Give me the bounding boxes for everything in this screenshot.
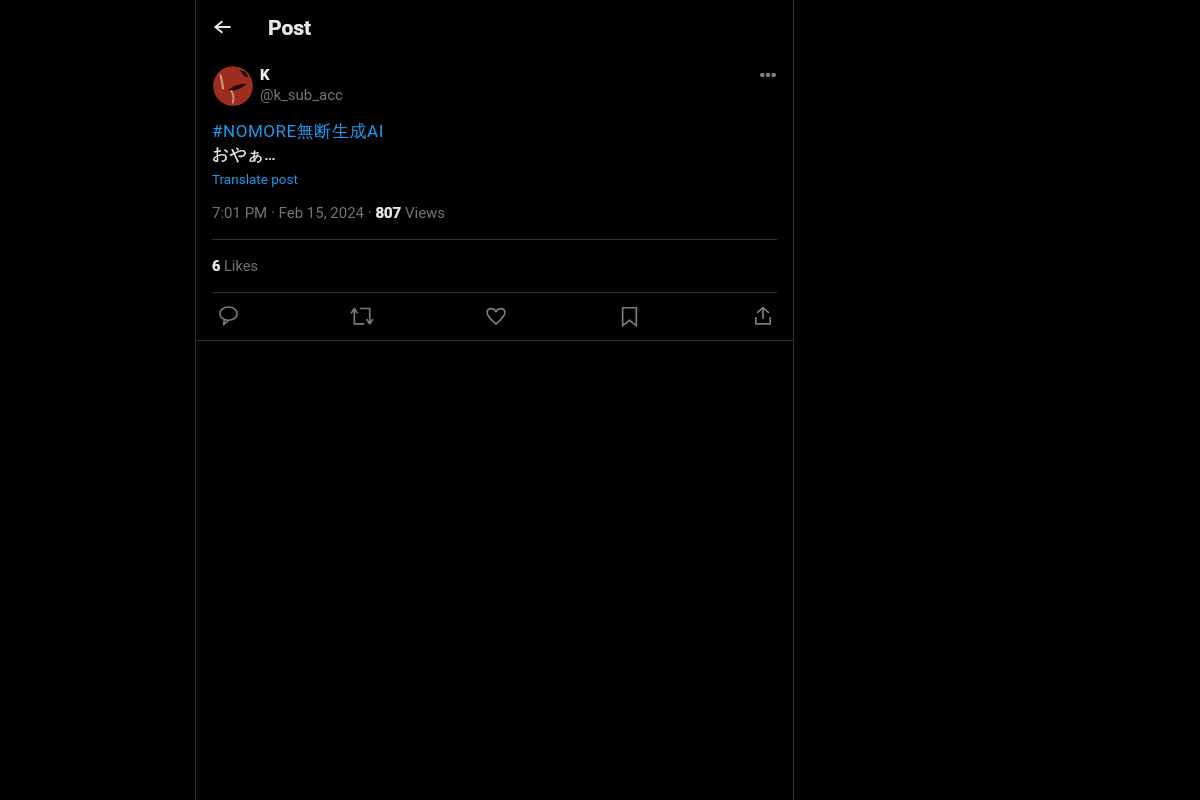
button[interactable]: Like xyxy=(478,298,514,334)
button[interactable]: More options xyxy=(752,59,784,91)
staticText: 6 Likes xyxy=(212,257,258,274)
button[interactable]: Translate post xyxy=(212,171,298,187)
staticText: おやぁ… xyxy=(212,144,276,165)
button[interactable]: K xyxy=(260,64,270,82)
staticText: #NOMORE無断生成AI xyxy=(212,121,384,142)
staticText: Translate post xyxy=(212,171,298,187)
staticText: @k_sub_acc xyxy=(260,86,343,104)
button[interactable]: Bookmark xyxy=(611,298,647,334)
button[interactable]: @k_sub_acc xyxy=(260,86,343,104)
staticText: 7:01 PM · Feb 15, 2024 · 807 Views xyxy=(212,204,446,222)
button[interactable]: Repost xyxy=(344,298,380,334)
button[interactable]: Profile picture xyxy=(213,66,253,106)
button[interactable]: Reply xyxy=(210,298,246,334)
button[interactable]: Share xyxy=(745,298,781,334)
button[interactable]: Back xyxy=(204,9,240,45)
staticText: K xyxy=(260,66,270,84)
staticText: Post xyxy=(268,16,312,41)
